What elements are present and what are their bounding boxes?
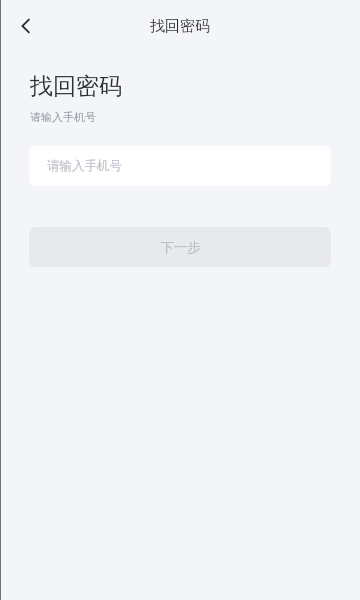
button[interactable]: 请输入手机号 (29, 146, 331, 186)
staticText: 请输入手机号 (30, 110, 96, 124)
staticText: 找回密码 (30, 72, 122, 101)
staticText: 找回密码 (150, 17, 210, 36)
staticText: 请输入手机号 (47, 158, 122, 174)
button[interactable]: 下一步 (29, 227, 331, 267)
button[interactable]: Back (6, 6, 46, 46)
staticText: 下一步 (160, 239, 201, 256)
